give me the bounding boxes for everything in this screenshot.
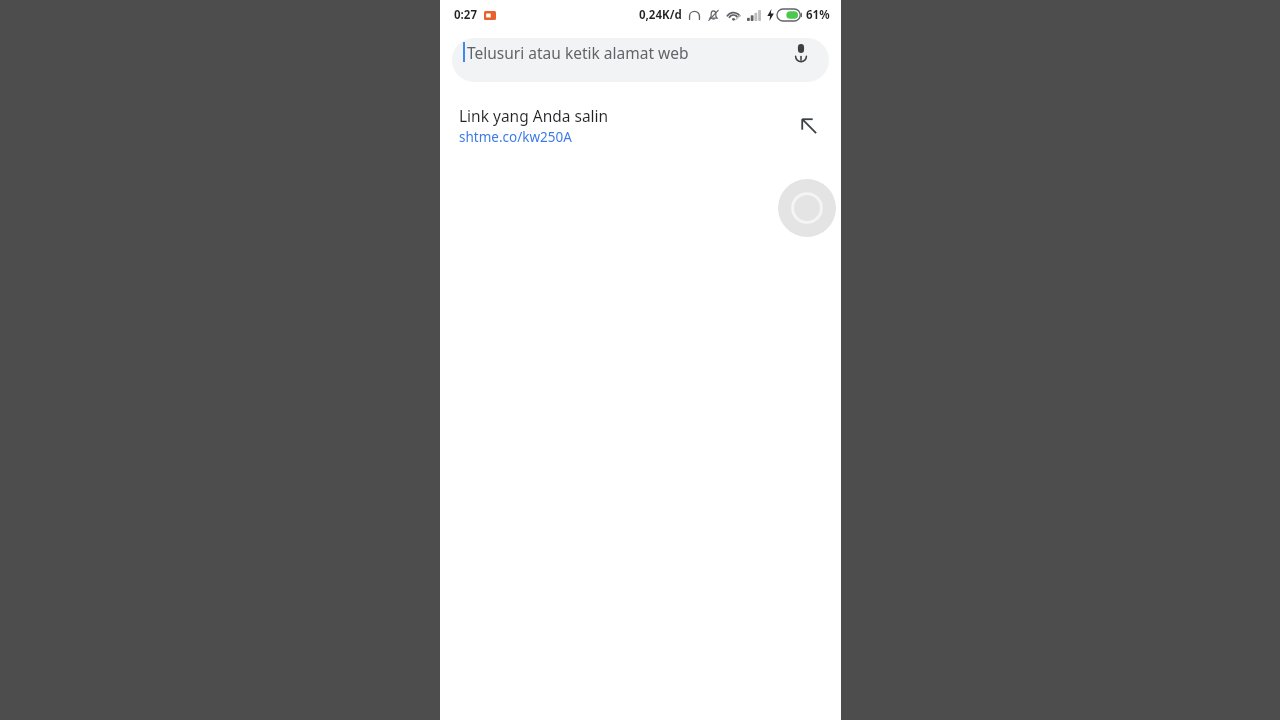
button[interactable]: Voice search [787, 38, 815, 66]
staticText: 0:27 [454, 7, 477, 23]
button[interactable]: Telusuri atau ketik alamat web [452, 38, 829, 82]
staticText: Telusuri atau ketik alamat web [467, 42, 787, 63]
staticText: Link yang Anda salin [459, 105, 609, 126]
staticText: 0,24K/d [639, 7, 682, 23]
staticText: shtme.co/kw250A [459, 128, 572, 146]
staticText: 61% [806, 7, 830, 23]
button[interactable]: Screen recorder [778, 179, 836, 237]
button[interactable]: Link yang Anda salin [440, 100, 841, 150]
button[interactable]: Edit query [791, 108, 825, 142]
